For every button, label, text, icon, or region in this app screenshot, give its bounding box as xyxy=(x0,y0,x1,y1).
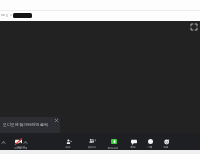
button[interactable]: 오디오에 참가하려면 클릭 xyxy=(0,117,60,134)
staticText: 보안 xyxy=(57,146,79,149)
button[interactable]: 채팅 xyxy=(122,133,144,150)
staticText: 오디오에 참가하려면 클릭 xyxy=(3,122,48,127)
button[interactable]: 참가자 xyxy=(81,133,103,150)
button[interactable]: 비디오 시작 xyxy=(10,133,32,150)
staticText: 채팅 xyxy=(122,146,144,149)
button[interactable]: Close xyxy=(54,118,59,123)
staticText: 반응 xyxy=(155,146,177,149)
staticText: 참가자 xyxy=(81,146,103,149)
button[interactable]: Full screen xyxy=(189,22,198,31)
button[interactable]: 기록 xyxy=(139,133,161,150)
staticText: 화면 공유 xyxy=(102,146,124,149)
button[interactable]: Address bar xyxy=(13,13,32,18)
staticText: 기록 xyxy=(139,146,161,149)
button[interactable]: 화면 공유 xyxy=(102,133,124,150)
button[interactable]: 음소거 xyxy=(10,133,32,150)
staticText: 비디오 시작 xyxy=(10,146,32,149)
staticText: 음소거 xyxy=(10,146,32,149)
button[interactable]: 보안 xyxy=(57,133,79,150)
button[interactable]: 반응 xyxy=(155,133,177,150)
